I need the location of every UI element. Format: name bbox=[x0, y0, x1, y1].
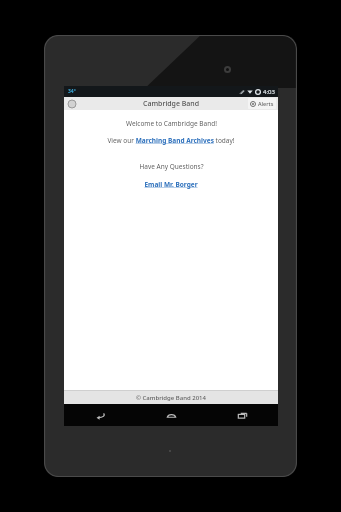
staticText: 4:03 bbox=[263, 88, 275, 96]
button[interactable]: Recent apps bbox=[207, 404, 278, 426]
staticText: 34° bbox=[68, 88, 76, 95]
staticText: © Cambridge Band 2014 bbox=[136, 394, 206, 402]
staticText: Alerts bbox=[258, 100, 274, 107]
button[interactable]: View our Marching Band Archives today! bbox=[107, 136, 235, 145]
staticText: Have Any Questions? bbox=[139, 162, 204, 171]
staticText: Welcome to Cambridge Band! bbox=[126, 119, 217, 128]
button[interactable]: Home bbox=[136, 404, 207, 426]
staticText: Cambridge Band bbox=[143, 99, 200, 109]
staticText: Email Mr. Borger bbox=[144, 180, 198, 189]
staticText: View our Marching Band Archives today! bbox=[107, 136, 235, 145]
button[interactable]: Email Mr. Borger bbox=[144, 180, 198, 189]
button[interactable]: Back bbox=[64, 404, 136, 426]
button[interactable]: Alerts bbox=[248, 98, 276, 109]
button[interactable]: Menu bbox=[67, 99, 77, 109]
